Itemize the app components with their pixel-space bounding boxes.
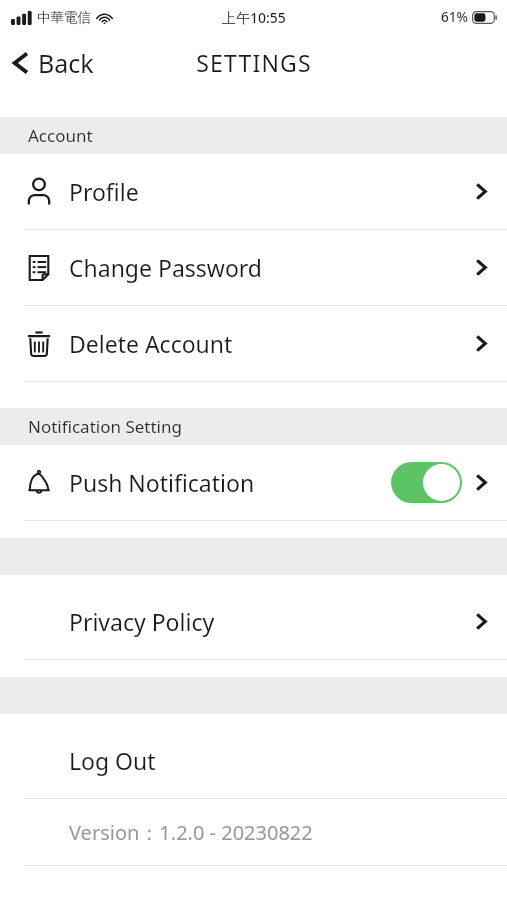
staticText: SETTINGS xyxy=(196,47,312,78)
button[interactable]: Push notification toggle, on xyxy=(391,462,462,503)
staticText: Profile xyxy=(69,176,475,207)
button[interactable]: Delete Account xyxy=(0,306,507,381)
button[interactable]: Push Notification xyxy=(0,445,507,520)
button[interactable]: Log Out xyxy=(0,723,507,798)
button[interactable]: Profile xyxy=(0,154,507,229)
button[interactable]: Change Password xyxy=(0,230,507,305)
staticText: Account xyxy=(28,124,93,147)
staticText: Push Notification xyxy=(69,467,391,498)
staticText: 61% xyxy=(441,8,468,26)
staticText: Notification Setting xyxy=(28,415,182,438)
button[interactable]: Privacy Policy xyxy=(0,584,507,659)
button[interactable]: Back xyxy=(0,40,108,86)
staticText: 上午10:55 xyxy=(222,8,286,27)
staticText: Delete Account xyxy=(69,328,475,359)
staticText: Privacy Policy xyxy=(69,606,475,637)
staticText: Back xyxy=(38,46,94,80)
staticText: 中華電信 xyxy=(37,9,91,26)
staticText: Version：1.2.0 - 20230822 xyxy=(69,819,313,846)
staticText: Change Password xyxy=(69,252,475,283)
staticText: Log Out xyxy=(69,745,475,776)
